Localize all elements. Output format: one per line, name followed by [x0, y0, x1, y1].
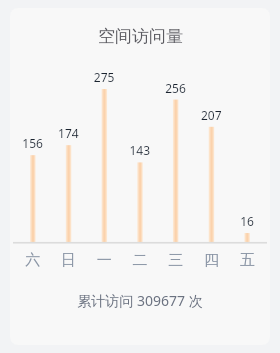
- button[interactable]: 空间访问量: [10, 8, 270, 345]
- other: Visits bar chart: [10, 47, 270, 275]
- staticText: 累计访问 309677 次: [77, 291, 203, 310]
- staticText: 空间访问量: [98, 26, 183, 47]
